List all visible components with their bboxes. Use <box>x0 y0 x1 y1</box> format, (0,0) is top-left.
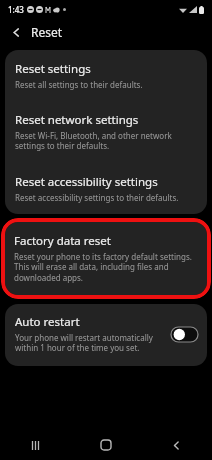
staticText: Reset <box>31 24 63 40</box>
staticText: Your phone will restart automatically wi… <box>15 332 166 354</box>
button[interactable]: Recent apps <box>0 430 70 460</box>
button[interactable]: Reset accessibility settings <box>5 163 207 214</box>
button[interactable]: Auto restart toggle <box>171 327 198 342</box>
staticText: 1:43 <box>8 4 24 15</box>
staticText: Reset network settings <box>15 112 139 128</box>
staticText: Factory data reset <box>14 233 111 249</box>
staticText: Reset accessibility settings to their de… <box>15 192 179 203</box>
button[interactable]: Back <box>7 23 26 42</box>
staticText: Reset your phone to its factory default … <box>14 251 195 284</box>
staticText: Reset Wi-Fi, Bluetooth, and other networ… <box>15 130 195 152</box>
staticText: Reset accessibility settings <box>15 174 158 190</box>
button[interactable]: Reset settings <box>5 50 207 101</box>
button[interactable]: Auto restart <box>5 304 207 366</box>
button[interactable]: Reset network settings <box>5 101 207 163</box>
staticText: Auto restart <box>15 314 80 330</box>
staticText: Reset settings <box>15 61 91 77</box>
button[interactable]: Factory data reset <box>5 222 207 295</box>
staticText: Reset all settings to their defaults. <box>15 79 143 90</box>
button[interactable]: Home <box>70 430 141 460</box>
button[interactable]: Back <box>141 430 212 460</box>
